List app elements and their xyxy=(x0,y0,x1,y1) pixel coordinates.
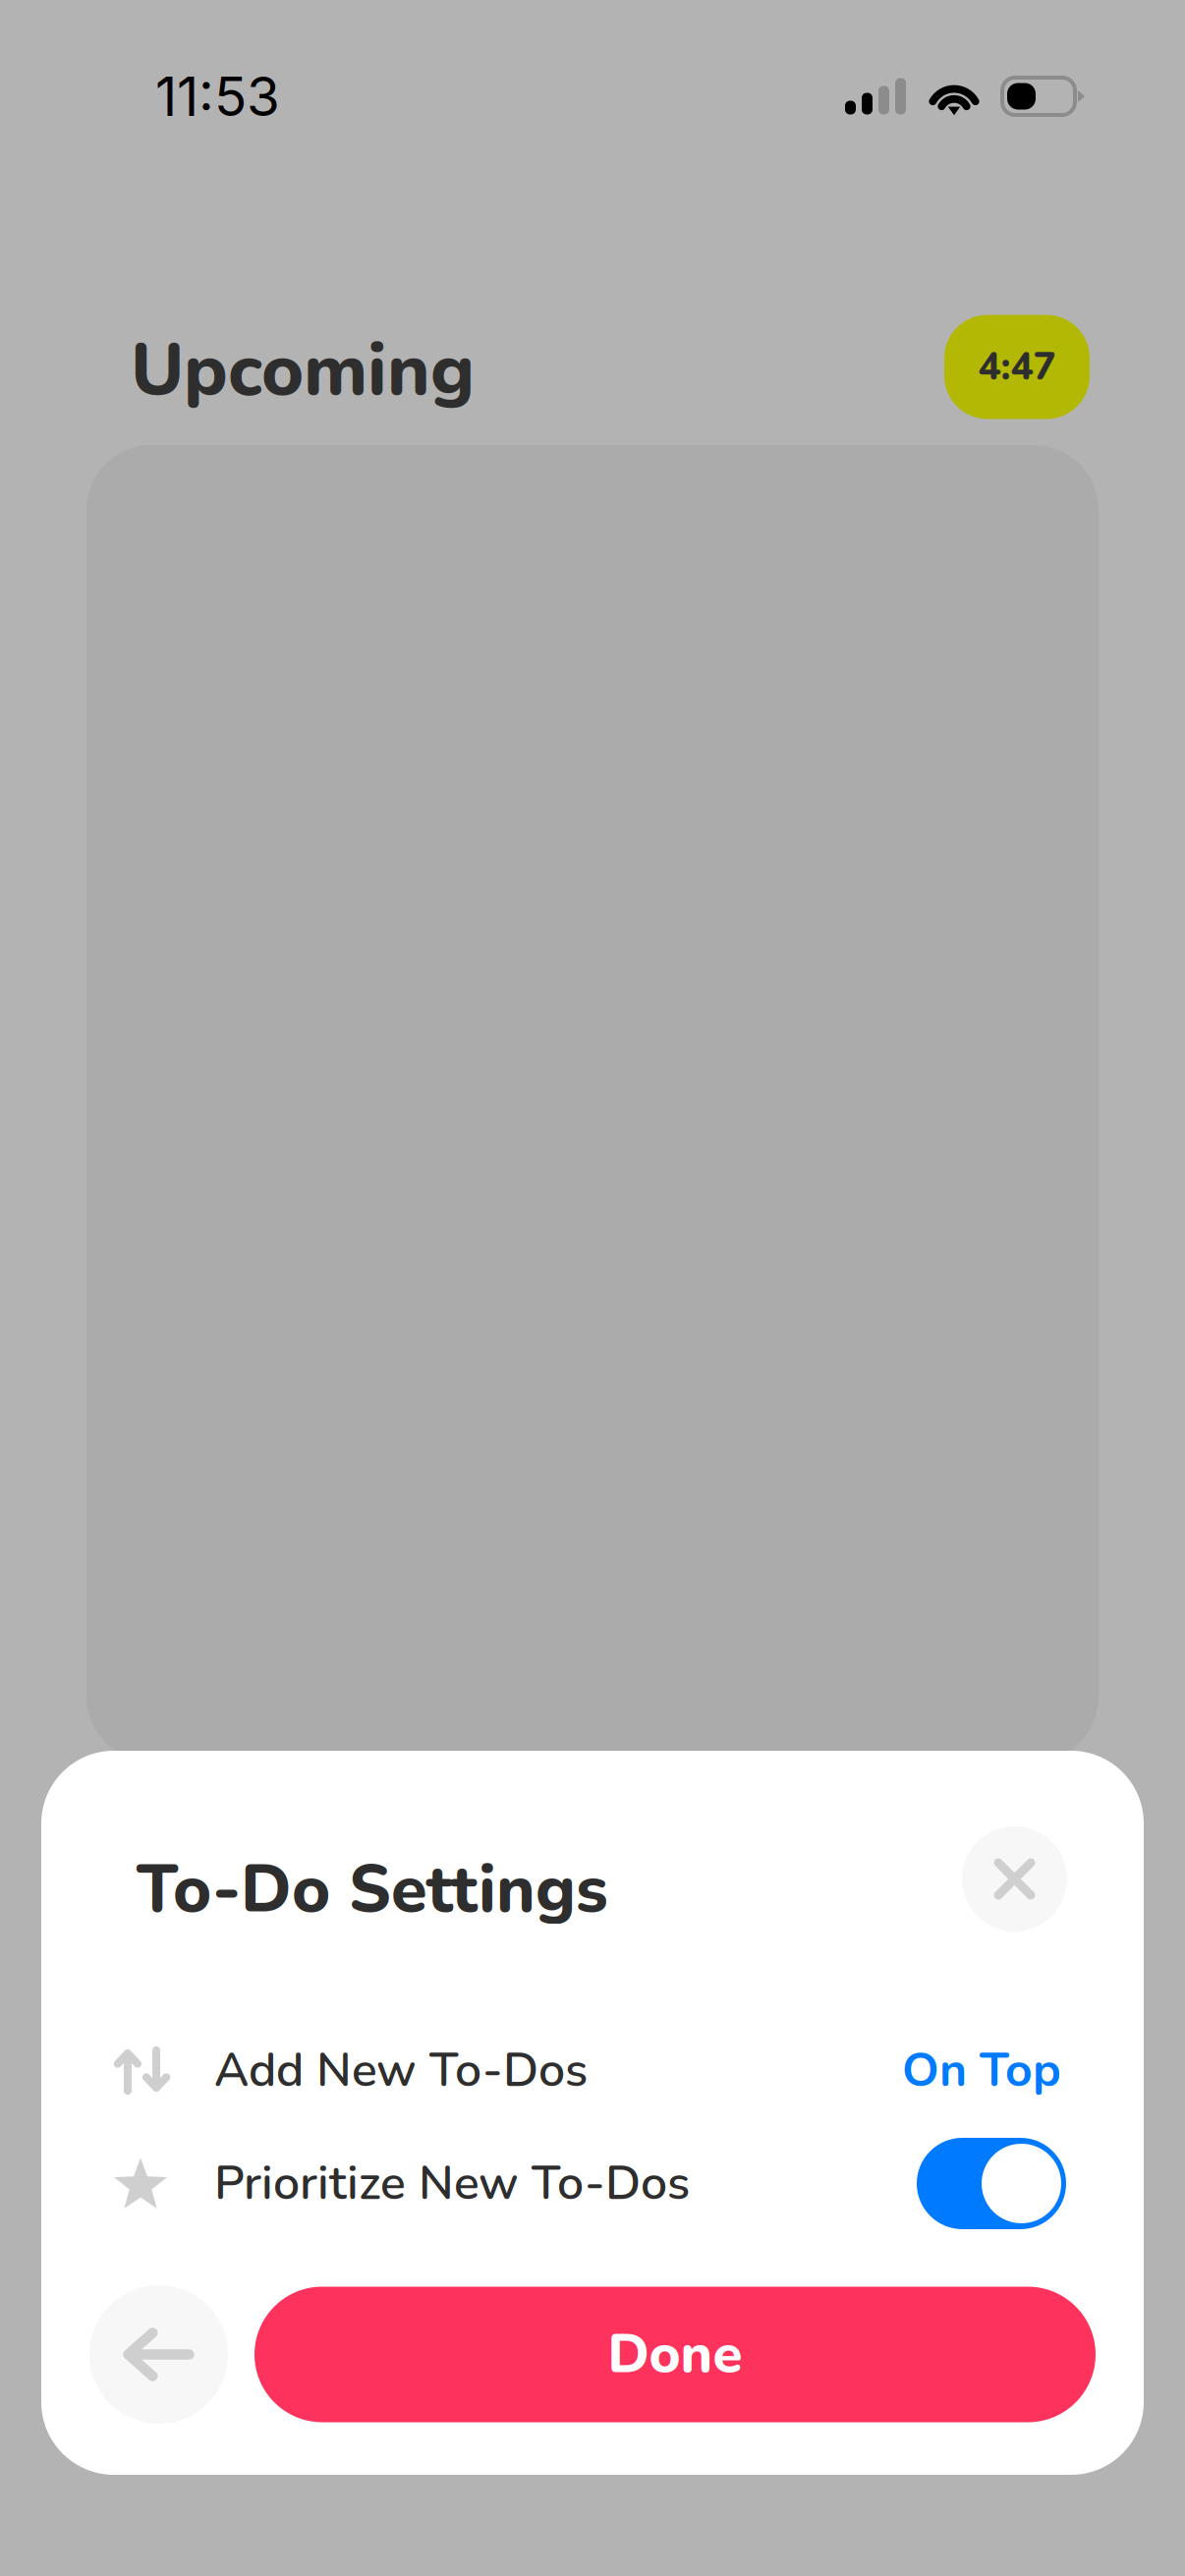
staticText: Upcoming xyxy=(131,321,475,420)
button[interactable]: Done xyxy=(254,2287,1096,2422)
staticText: Prioritize New To-Dos xyxy=(214,2151,690,2216)
staticText: 4:47 xyxy=(978,341,1056,393)
staticText: 11:53 xyxy=(155,64,280,129)
staticText: Done xyxy=(608,2318,742,2391)
staticText: To-Do Settings xyxy=(137,1845,608,1934)
button[interactable]: Close xyxy=(962,1826,1067,1932)
button[interactable]: Back xyxy=(89,2285,228,2424)
button[interactable]: Prioritize New To-Dos xyxy=(41,2127,1144,2240)
staticText: Add New To-Dos xyxy=(214,2038,588,2103)
staticText: On Top xyxy=(902,2038,1061,2103)
button[interactable]: Add New To-Dos xyxy=(41,2014,1144,2127)
